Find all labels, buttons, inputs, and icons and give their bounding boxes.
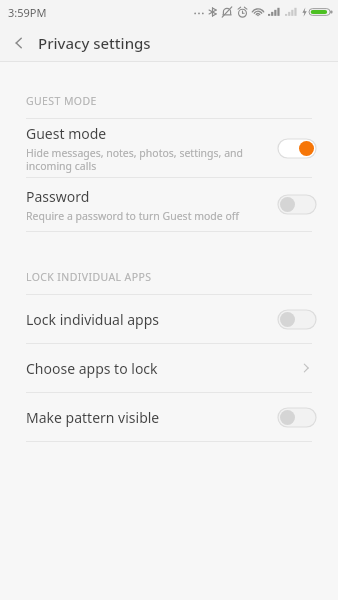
staticText: 3:59PM [8, 5, 47, 20]
staticText: Hide messages, notes, photos, settings, … [26, 146, 243, 173]
button[interactable]: Toggle off [278, 408, 316, 427]
button[interactable]: Toggle off [278, 310, 316, 329]
button[interactable]: Choose apps to lock [0, 344, 338, 392]
staticText: Require a password to turn Guest mode of… [26, 209, 240, 223]
staticText: LOCK INDIVIDUAL APPS [26, 270, 152, 284]
button[interactable]: Make pattern visible [0, 393, 338, 441]
button[interactable]: Password [0, 178, 338, 231]
button[interactable]: Lock individual apps [0, 295, 338, 343]
button[interactable]: Toggle on [278, 139, 316, 158]
staticText: Choose apps to lock [26, 359, 158, 378]
button[interactable]: Guest mode [0, 119, 338, 177]
staticText: Make pattern visible [26, 408, 160, 427]
staticText: Password [26, 187, 90, 206]
button[interactable]: Back [0, 24, 38, 61]
staticText: GUEST MODE [26, 94, 97, 108]
staticText: Lock individual apps [26, 310, 159, 329]
button[interactable]: Open [296, 358, 316, 378]
staticText: Guest mode [26, 124, 107, 143]
button[interactable]: Toggle off [278, 195, 316, 214]
staticText: Privacy settings [38, 33, 151, 53]
